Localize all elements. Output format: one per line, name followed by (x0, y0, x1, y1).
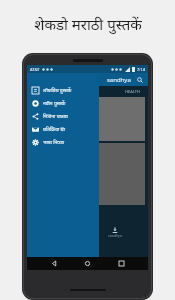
button[interactable]: Search (135, 75, 144, 84)
staticText: नवीन पुस्तकें (43, 100, 66, 107)
button[interactable]: HEALTH (125, 89, 140, 94)
button[interactable]: लोकप्रिय पुस्तकें (27, 84, 99, 97)
staticText: भाषा निवडा (43, 139, 65, 146)
button[interactable]: Back (48, 257, 61, 270)
staticText: sandhya (107, 76, 131, 84)
button[interactable]: भाषा निवडा (27, 136, 99, 149)
staticText: sandhya (108, 233, 122, 238)
button[interactable]: Install (108, 227, 122, 238)
button[interactable]: Recents (115, 257, 128, 270)
staticText: मित्रांना पाठवा (43, 113, 68, 120)
staticText: AT&T (30, 67, 40, 72)
staticText: प्रतिक्रिया द्या (43, 126, 66, 133)
staticText: लोकप्रिय पुस्तकें (43, 87, 72, 94)
button[interactable]: Home (81, 257, 94, 270)
staticText: 7:14 (137, 67, 145, 72)
button[interactable]: प्रतिक्रिया द्या (27, 123, 99, 136)
staticText: शेकडो मराठी पुस्तकें (34, 14, 142, 34)
staticText: HEALTH (125, 89, 140, 94)
button[interactable]: नवीन पुस्तकें (27, 97, 99, 110)
button[interactable] (85, 143, 145, 205)
button[interactable]: मित्रांना पाठवा (27, 110, 99, 123)
button[interactable] (85, 97, 145, 141)
